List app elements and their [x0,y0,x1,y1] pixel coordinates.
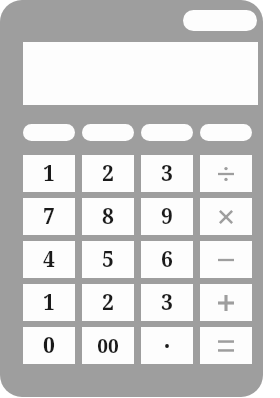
button[interactable]: Double zero [82,327,134,364]
button[interactable]: Multiply [200,198,252,235]
staticText: 3 [161,288,173,317]
button[interactable]: 2 [82,284,134,321]
button[interactable]: Add [200,284,252,321]
staticText: 3 [161,159,173,188]
button[interactable]: Divide [200,155,252,192]
button[interactable]: 9 [141,198,193,235]
button[interactable]: 8 [82,198,134,235]
button[interactable]: Decimal point [141,327,193,364]
button[interactable]: On / C [23,124,75,141]
staticText: 2 [102,159,114,188]
button[interactable]: 7 [23,198,75,235]
button[interactable]: 3 [141,284,193,321]
button[interactable]: Equals [200,327,252,364]
button[interactable]: 6 [141,241,193,278]
staticText: 2 [102,288,114,317]
button[interactable]: 3 [141,155,193,192]
staticText: 0 [43,331,55,360]
staticText: 4 [43,245,55,274]
staticText: 5 [102,245,114,274]
staticText: 7 [43,202,55,231]
button[interactable]: 2 [82,155,134,192]
staticText: 1 [43,159,55,188]
staticText: 9 [161,202,173,231]
button[interactable]: MRC [82,124,134,141]
button[interactable]: 1 [23,284,75,321]
button[interactable]: M plus [200,124,252,141]
button[interactable]: Solar panel [183,10,257,31]
staticText: 8 [102,202,114,231]
button[interactable]: 5 [82,241,134,278]
staticText: 1 [43,288,55,317]
button[interactable]: M minus [141,124,193,141]
button[interactable]: 1 [23,155,75,192]
staticText: 6 [161,245,173,274]
button[interactable]: 0 [23,327,75,364]
staticText: 00 [97,333,119,359]
button[interactable]: Subtract [200,241,252,278]
button[interactable]: 4 [23,241,75,278]
